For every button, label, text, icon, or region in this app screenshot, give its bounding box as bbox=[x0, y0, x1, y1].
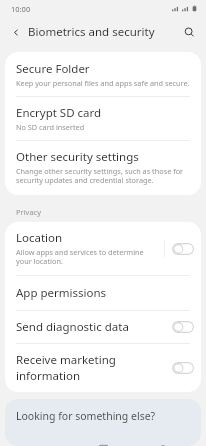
staticText: Secure Folder bbox=[16, 61, 90, 77]
button[interactable]: Toggle bbox=[172, 362, 194, 374]
staticText: Change other security settings, such as … bbox=[16, 166, 190, 186]
staticText: Encrypt SD card bbox=[16, 105, 102, 121]
staticText: Receive marketing information bbox=[16, 352, 172, 384]
button[interactable]: Back bbox=[6, 22, 26, 42]
staticText: Location bbox=[16, 230, 63, 246]
staticText: Biometrics and security bbox=[28, 24, 155, 40]
button[interactable]: Secure Folder bbox=[5, 52, 201, 96]
staticText: 10:00 bbox=[11, 4, 31, 14]
button[interactable]: Other security settings bbox=[5, 141, 201, 195]
staticText: Looking for something else? bbox=[16, 409, 156, 423]
button[interactable]: Send diagnostic data bbox=[5, 311, 201, 343]
staticText: Send diagnostic data bbox=[16, 319, 172, 335]
button[interactable]: Toggle bbox=[172, 321, 194, 333]
button[interactable]: Search bbox=[179, 22, 199, 42]
button[interactable]: Receive marketing information bbox=[5, 344, 201, 392]
button[interactable]: App permissions bbox=[5, 276, 201, 310]
staticText: Keep your personal files and apps safe a… bbox=[16, 78, 190, 88]
staticText: Other security settings bbox=[16, 149, 139, 165]
staticText: Allow apps and services to determine you… bbox=[16, 247, 159, 267]
staticText: App permissions bbox=[16, 285, 107, 301]
staticText: No SD card inserted bbox=[16, 122, 85, 132]
staticText: Privacy bbox=[16, 207, 42, 217]
button[interactable]: Location bbox=[5, 222, 201, 275]
button[interactable]: Toggle bbox=[172, 243, 194, 255]
button[interactable]: Encrypt SD card bbox=[5, 97, 201, 140]
